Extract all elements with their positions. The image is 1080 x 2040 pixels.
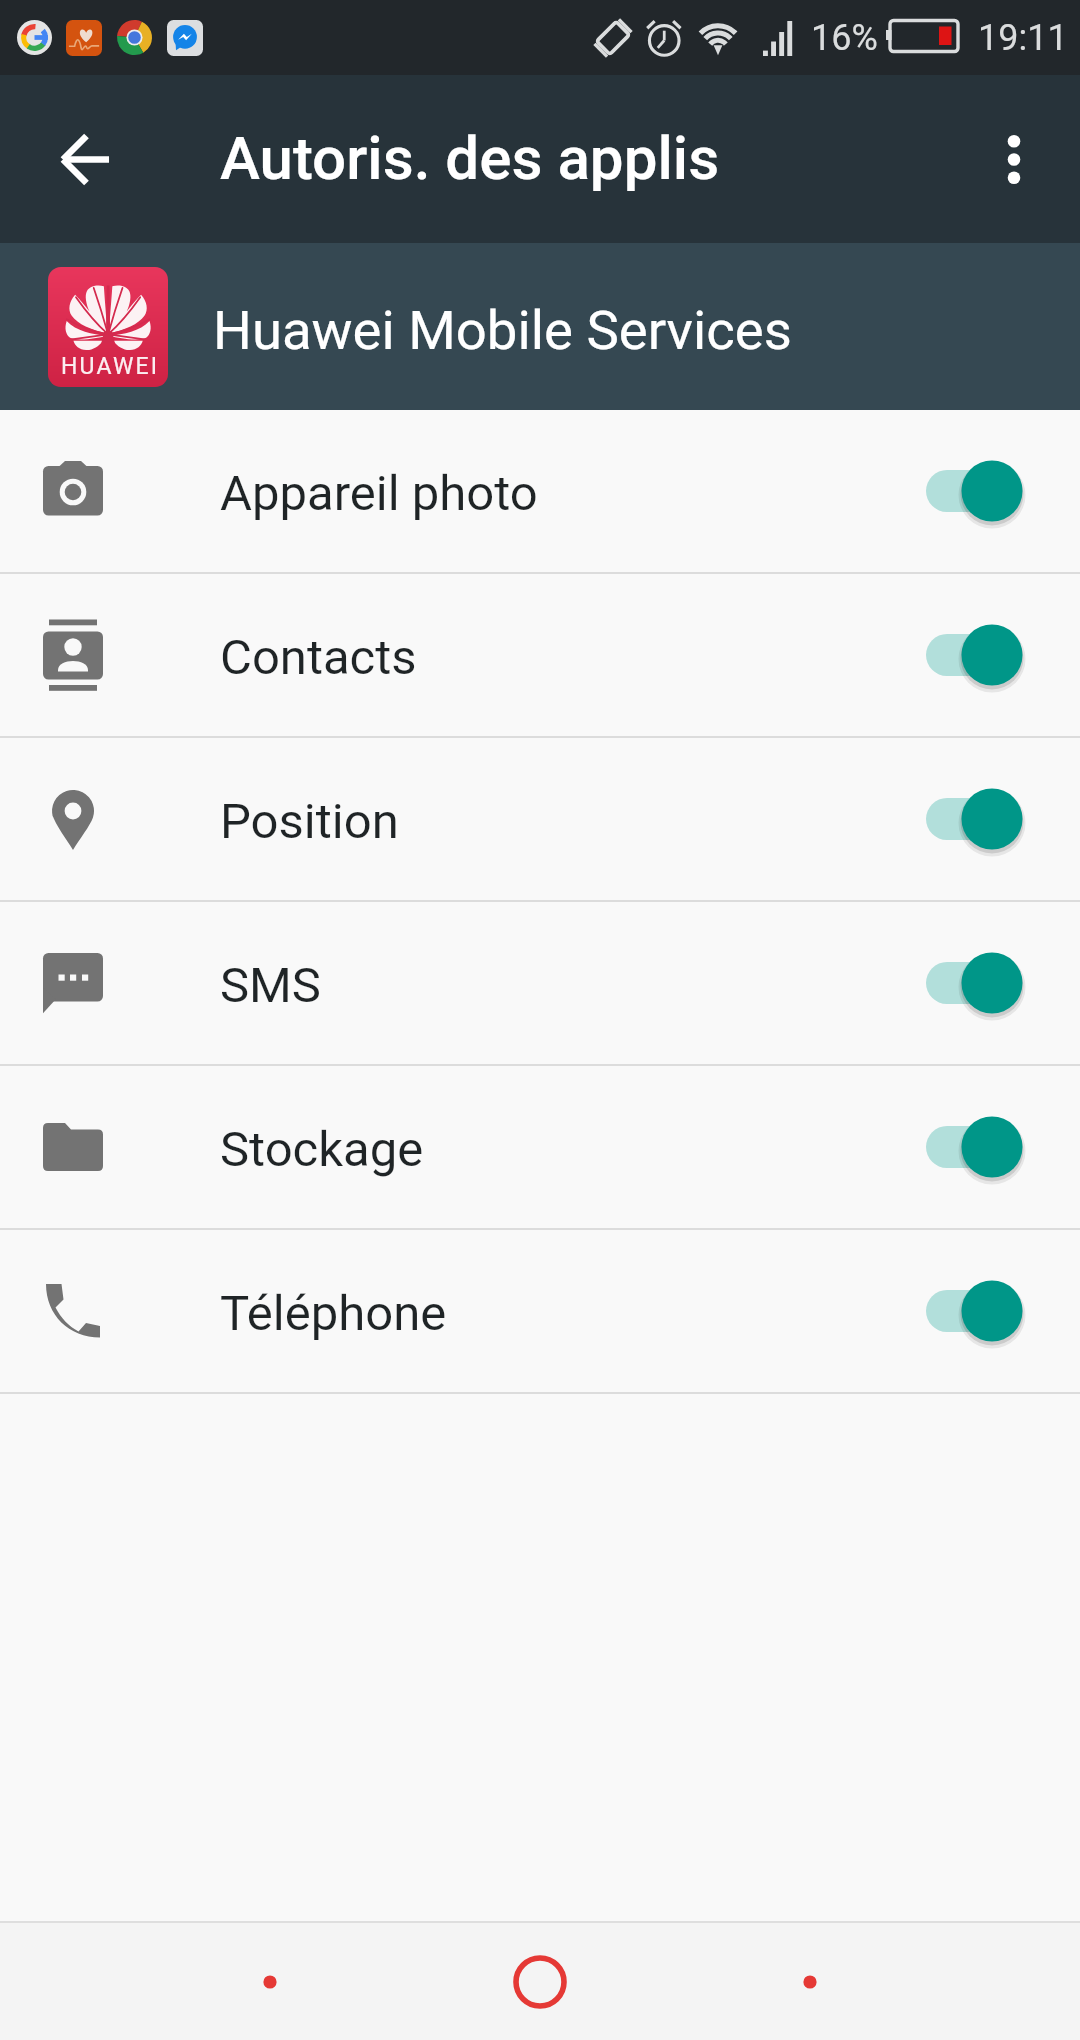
staticText: 19:11 <box>978 17 1068 59</box>
staticText: Position <box>220 793 399 850</box>
staticText: HUAWEI <box>61 353 160 380</box>
staticText: Stockage <box>220 1121 424 1178</box>
button[interactable]: Toggle Téléphone <box>926 1266 1036 1356</box>
staticText: Téléphone <box>220 1285 447 1342</box>
button[interactable]: HUAWEI <box>0 243 1080 410</box>
button[interactable]: SMS <box>0 902 1080 1064</box>
staticText: Contacts <box>220 629 417 686</box>
staticText: 16% <box>811 17 878 59</box>
button[interactable]: Back <box>180 1923 360 2040</box>
button[interactable]: Back <box>14 89 154 229</box>
button[interactable]: Home <box>450 1923 630 2040</box>
staticText: Huawei Mobile Services <box>213 298 792 362</box>
button[interactable]: Position <box>0 738 1080 900</box>
button[interactable]: Recent apps <box>720 1923 900 2040</box>
button[interactable]: Toggle SMS <box>926 938 1036 1028</box>
button[interactable]: More options <box>970 115 1058 203</box>
button[interactable]: Toggle Contacts <box>926 610 1036 700</box>
button[interactable]: Toggle Position <box>926 774 1036 864</box>
button[interactable]: Toggle Stockage <box>926 1102 1036 1192</box>
staticText: Autoris. des applis <box>220 123 720 193</box>
button[interactable]: Stockage <box>0 1066 1080 1228</box>
button[interactable]: Appareil photo <box>0 410 1080 572</box>
button[interactable]: Téléphone <box>0 1230 1080 1392</box>
button[interactable]: Toggle Appareil photo <box>926 446 1036 536</box>
button[interactable]: Contacts <box>0 574 1080 736</box>
staticText: SMS <box>220 957 321 1014</box>
staticText: Appareil photo <box>220 465 538 522</box>
